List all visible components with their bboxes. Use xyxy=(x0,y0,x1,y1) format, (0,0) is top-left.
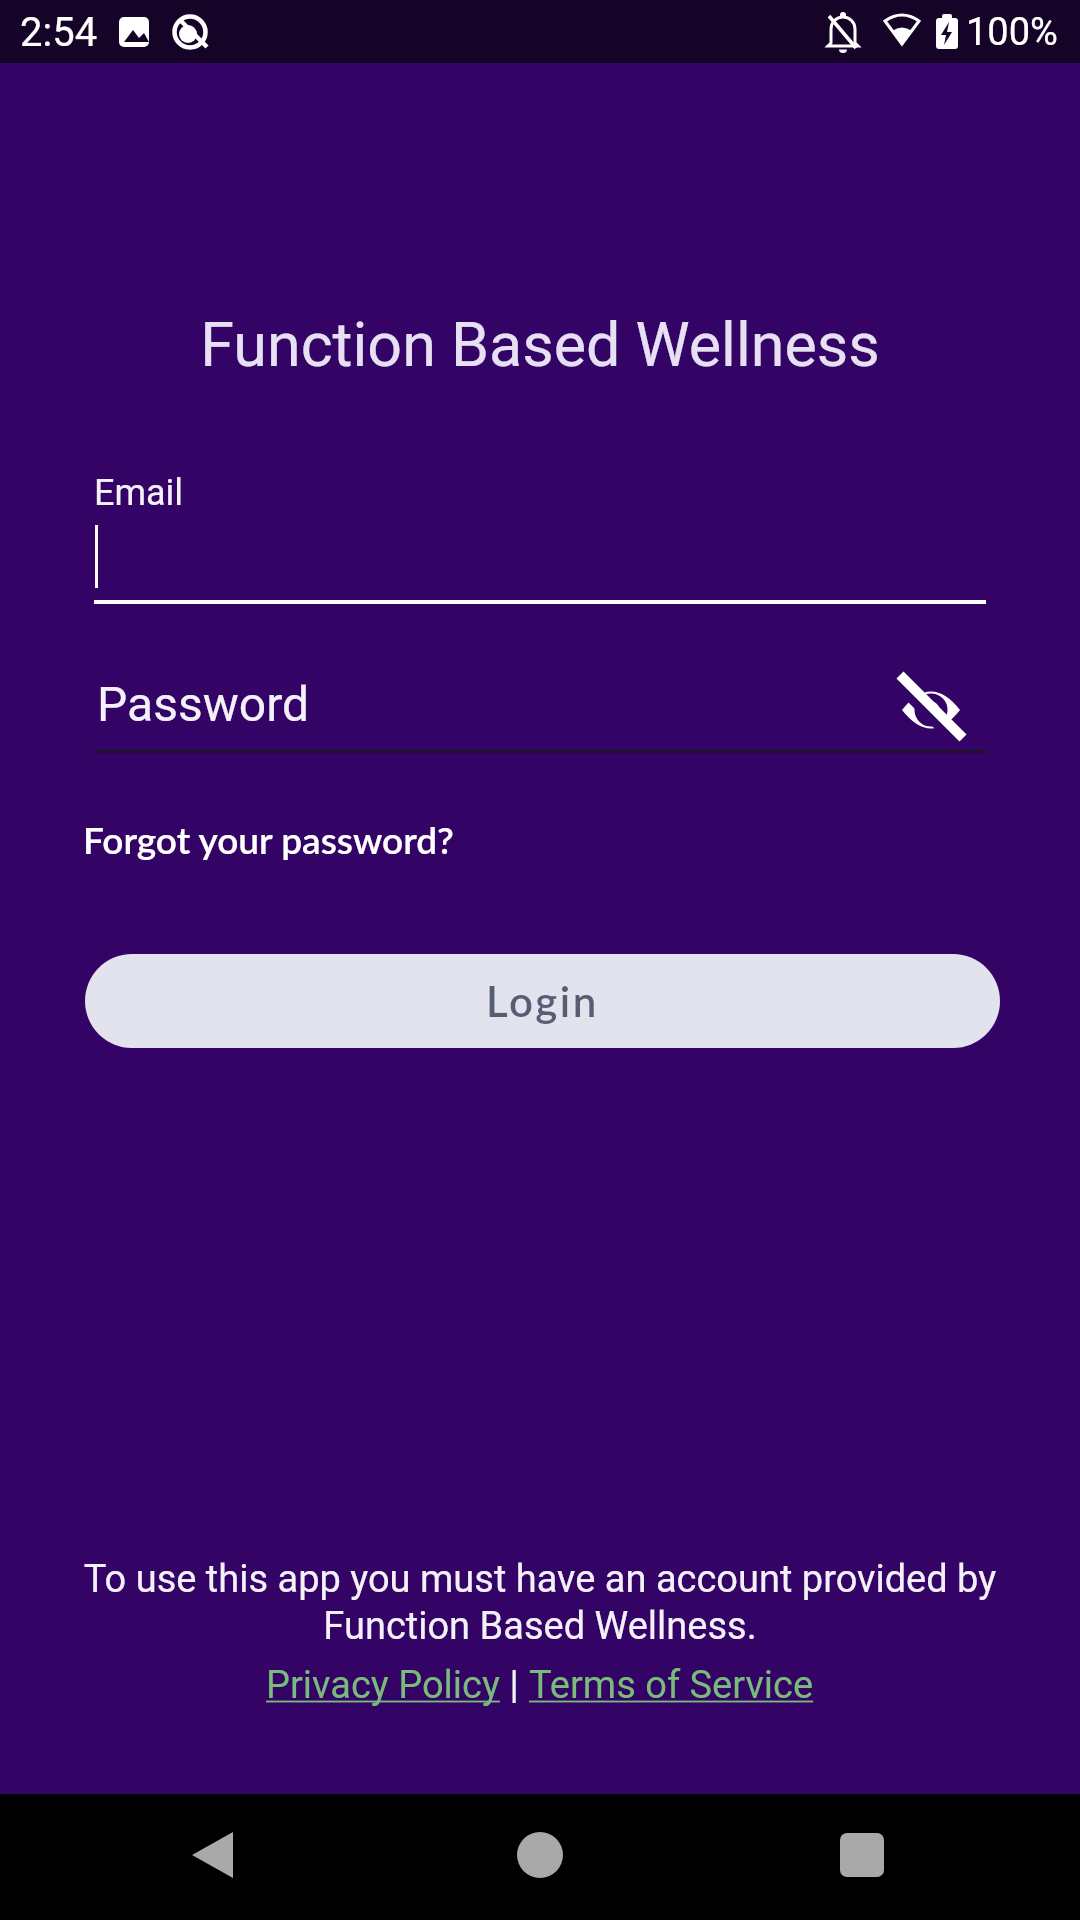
staticText: Login xyxy=(486,976,599,1026)
button[interactable] xyxy=(898,680,966,742)
staticText: Password xyxy=(97,676,310,732)
staticText: | xyxy=(500,1663,529,1708)
button[interactable] xyxy=(807,1800,917,1914)
staticText: To use this app you must have an account… xyxy=(0,1557,1080,1648)
button[interactable] xyxy=(160,1800,270,1914)
staticText: Function Based Wellness xyxy=(0,309,1080,380)
button[interactable]: Forgot your password? xyxy=(83,817,454,861)
button[interactable]: Privacy Policy xyxy=(266,1663,500,1708)
staticText: 2:54 xyxy=(20,9,98,56)
button[interactable]: Login xyxy=(85,954,1000,1048)
button[interactable]: Terms of Service xyxy=(529,1663,814,1708)
button[interactable] xyxy=(485,1800,595,1914)
staticText: Email xyxy=(94,472,184,514)
staticText: 100% xyxy=(966,10,1058,55)
